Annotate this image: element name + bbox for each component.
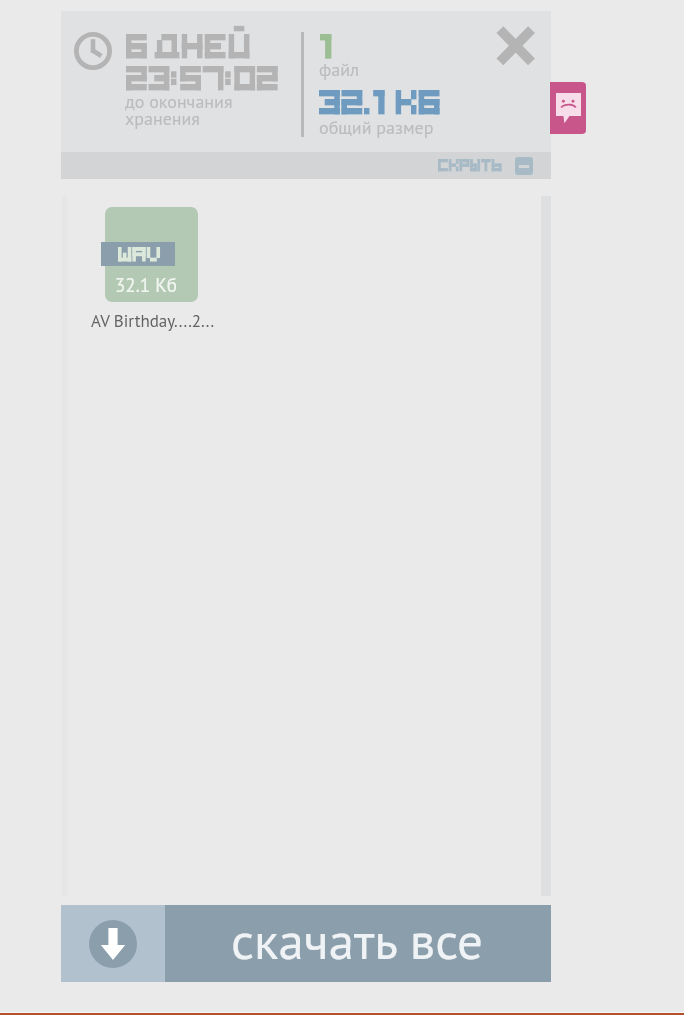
button[interactable]: скачать все — [61, 905, 551, 982]
staticText: хранения — [125, 107, 200, 130]
button[interactable]: Закрыть — [487, 19, 537, 69]
staticText: скачать все — [231, 907, 483, 973]
button[interactable]: Обратная связь — [550, 82, 586, 134]
staticText: файл — [319, 58, 360, 81]
staticText: до окончания — [125, 90, 233, 113]
button[interactable]: 32.1 Кб — [105, 207, 198, 302]
button[interactable] — [61, 152, 551, 179]
staticText: 32.1 Кб — [115, 273, 177, 298]
staticText: AV Birthday....2... — [91, 310, 215, 332]
staticText: общий размер — [319, 116, 434, 139]
